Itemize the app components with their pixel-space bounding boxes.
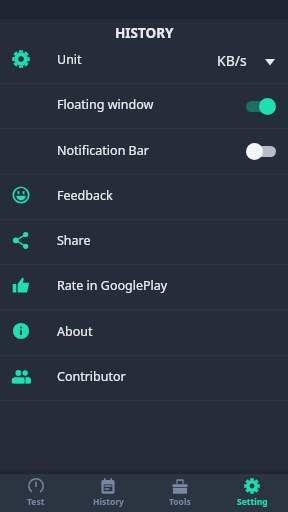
button[interactable]: Rate in GooglePlay: [0, 265, 288, 309]
button[interactable]: Contributor: [0, 356, 288, 400]
button[interactable]: Test: [0, 474, 72, 512]
staticText: Unit: [57, 51, 82, 68]
staticText: Test: [27, 496, 45, 508]
button[interactable]: Unit: [0, 39, 288, 83]
button[interactable]: Setting: [216, 474, 288, 512]
staticText: HISTORY: [115, 24, 174, 42]
staticText: Share: [57, 232, 91, 249]
button[interactable]: Share: [0, 220, 288, 264]
staticText: About: [57, 323, 93, 340]
button[interactable]: Notification Bar: [0, 129, 288, 174]
staticText: Setting: [237, 496, 268, 508]
button[interactable]: Feedback: [0, 175, 288, 219]
button[interactable]: Tools: [144, 474, 216, 512]
button[interactable]: Floating window: [0, 84, 288, 128]
staticText: Tools: [169, 496, 191, 508]
staticText: KB/s: [217, 51, 247, 70]
staticText: History: [93, 496, 124, 508]
staticText: Notification Bar: [57, 142, 149, 159]
staticText: Feedback: [57, 187, 113, 204]
staticText: Rate in GooglePlay: [57, 277, 168, 294]
button[interactable]: History: [72, 474, 144, 512]
staticText: Contributor: [57, 368, 126, 385]
button[interactable]: About: [0, 310, 288, 355]
staticText: Floating window: [57, 96, 154, 113]
